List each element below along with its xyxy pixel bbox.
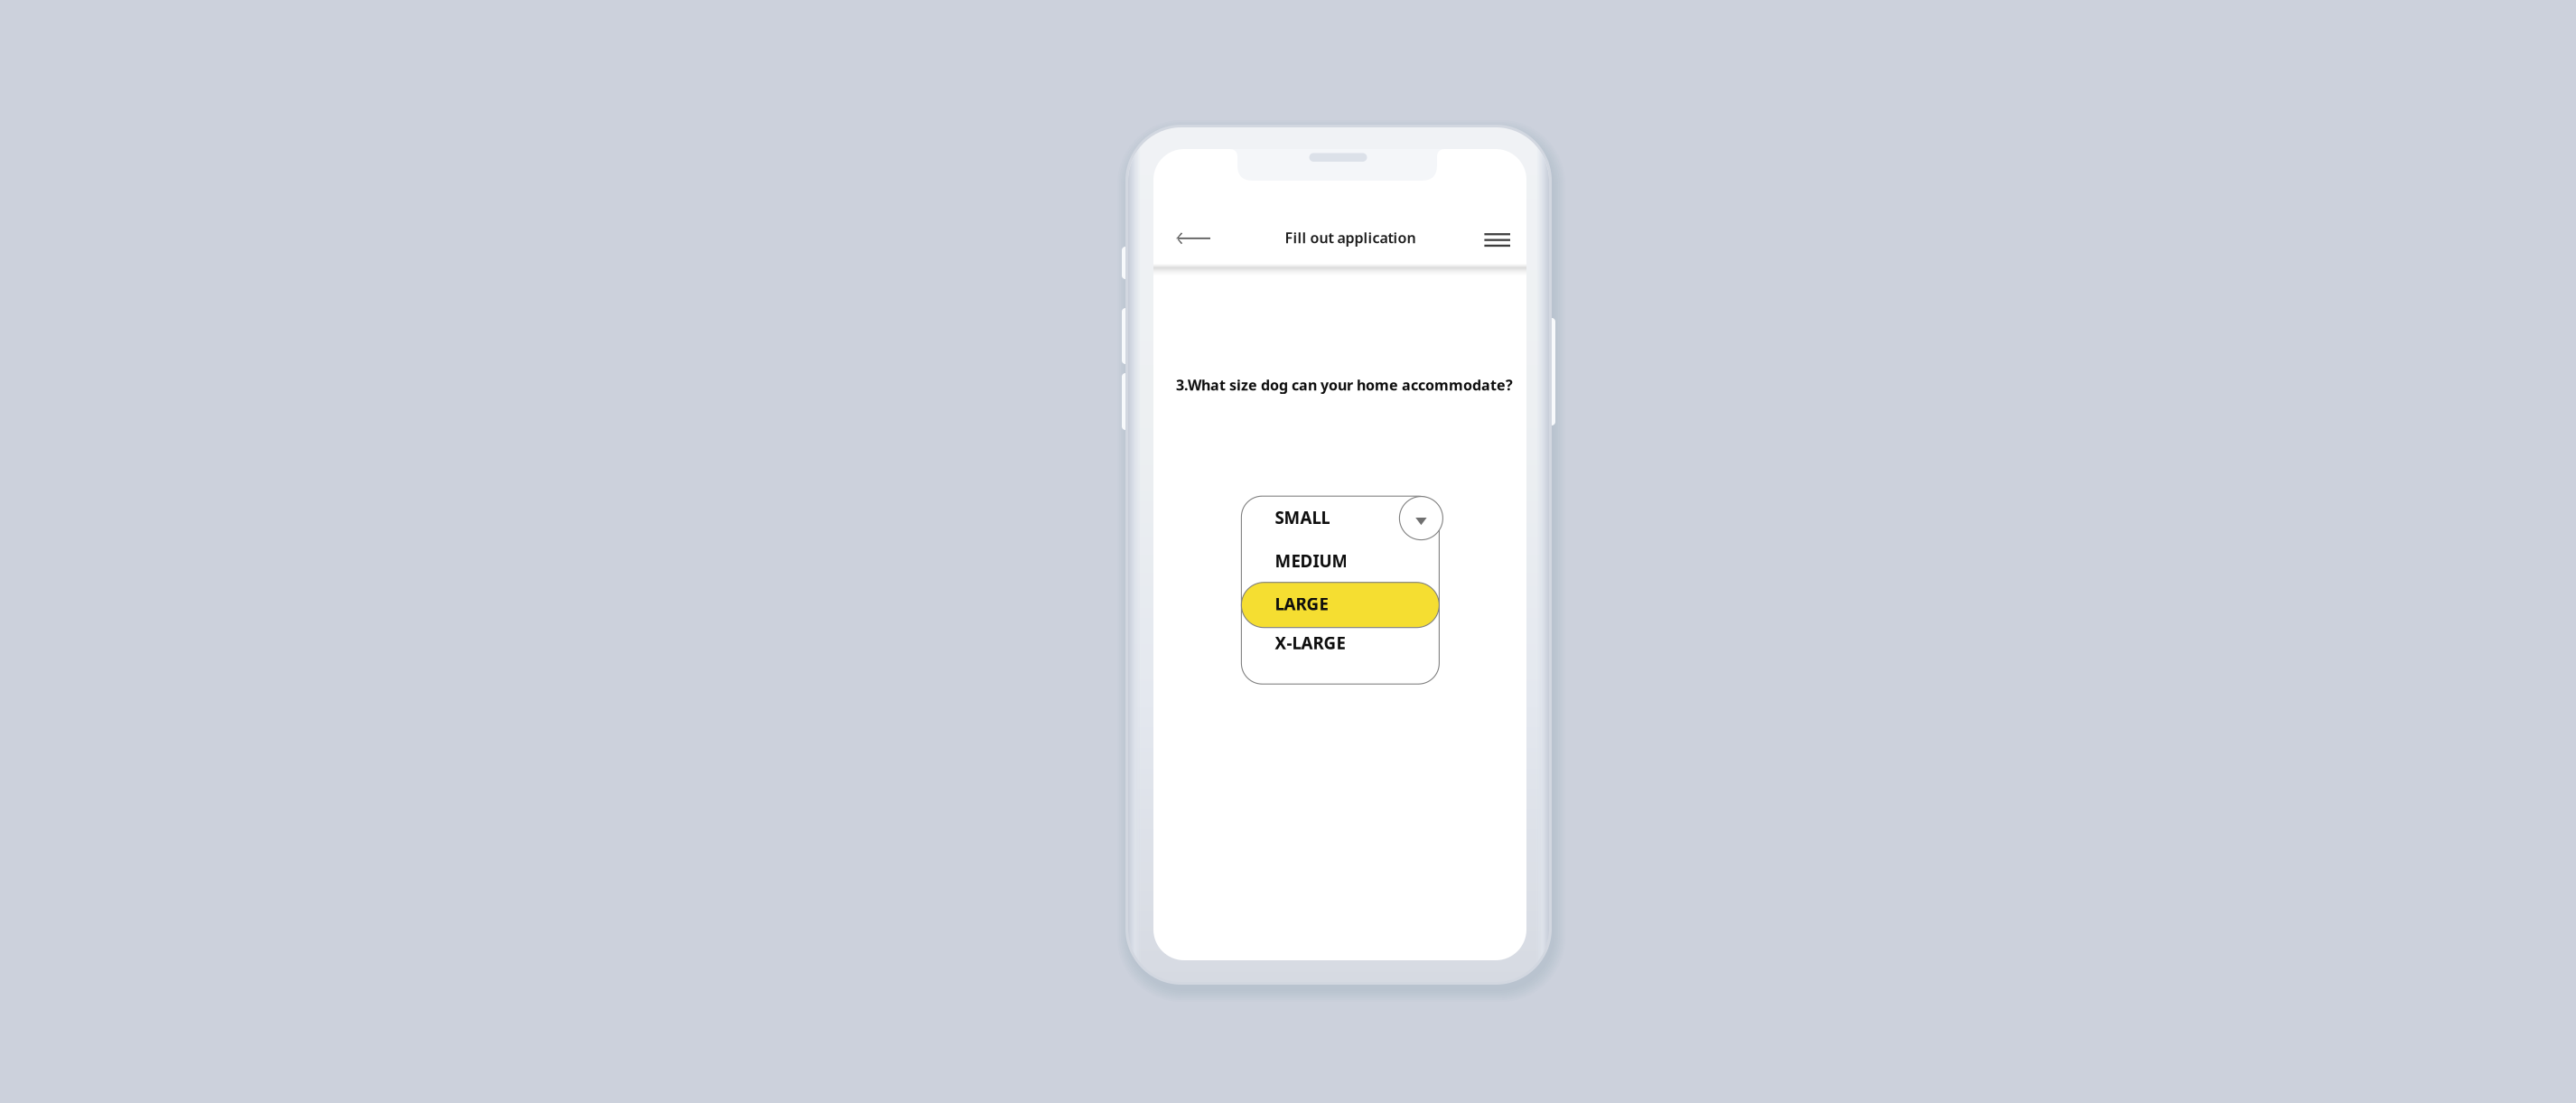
button[interactable]: SMALL — [1241, 495, 1439, 540]
button[interactable]: X-LARGE — [1241, 620, 1439, 665]
button[interactable]: Menu — [1461, 220, 1526, 260]
staticText: Fill out application — [1285, 228, 1416, 247]
staticText: MEDIUM — [1275, 550, 1348, 572]
staticText: SMALL — [1275, 506, 1330, 529]
staticText: LARGE — [1275, 593, 1328, 615]
staticText: X-LARGE — [1275, 631, 1345, 654]
button[interactable]: LARGE — [1241, 581, 1439, 626]
staticText: 3.What size dog can your home accommodat… — [1176, 375, 1513, 394]
button[interactable]: MEDIUM — [1241, 538, 1439, 583]
button[interactable]: Expand size options — [1399, 496, 1443, 540]
button[interactable]: Back — [1153, 218, 1234, 258]
